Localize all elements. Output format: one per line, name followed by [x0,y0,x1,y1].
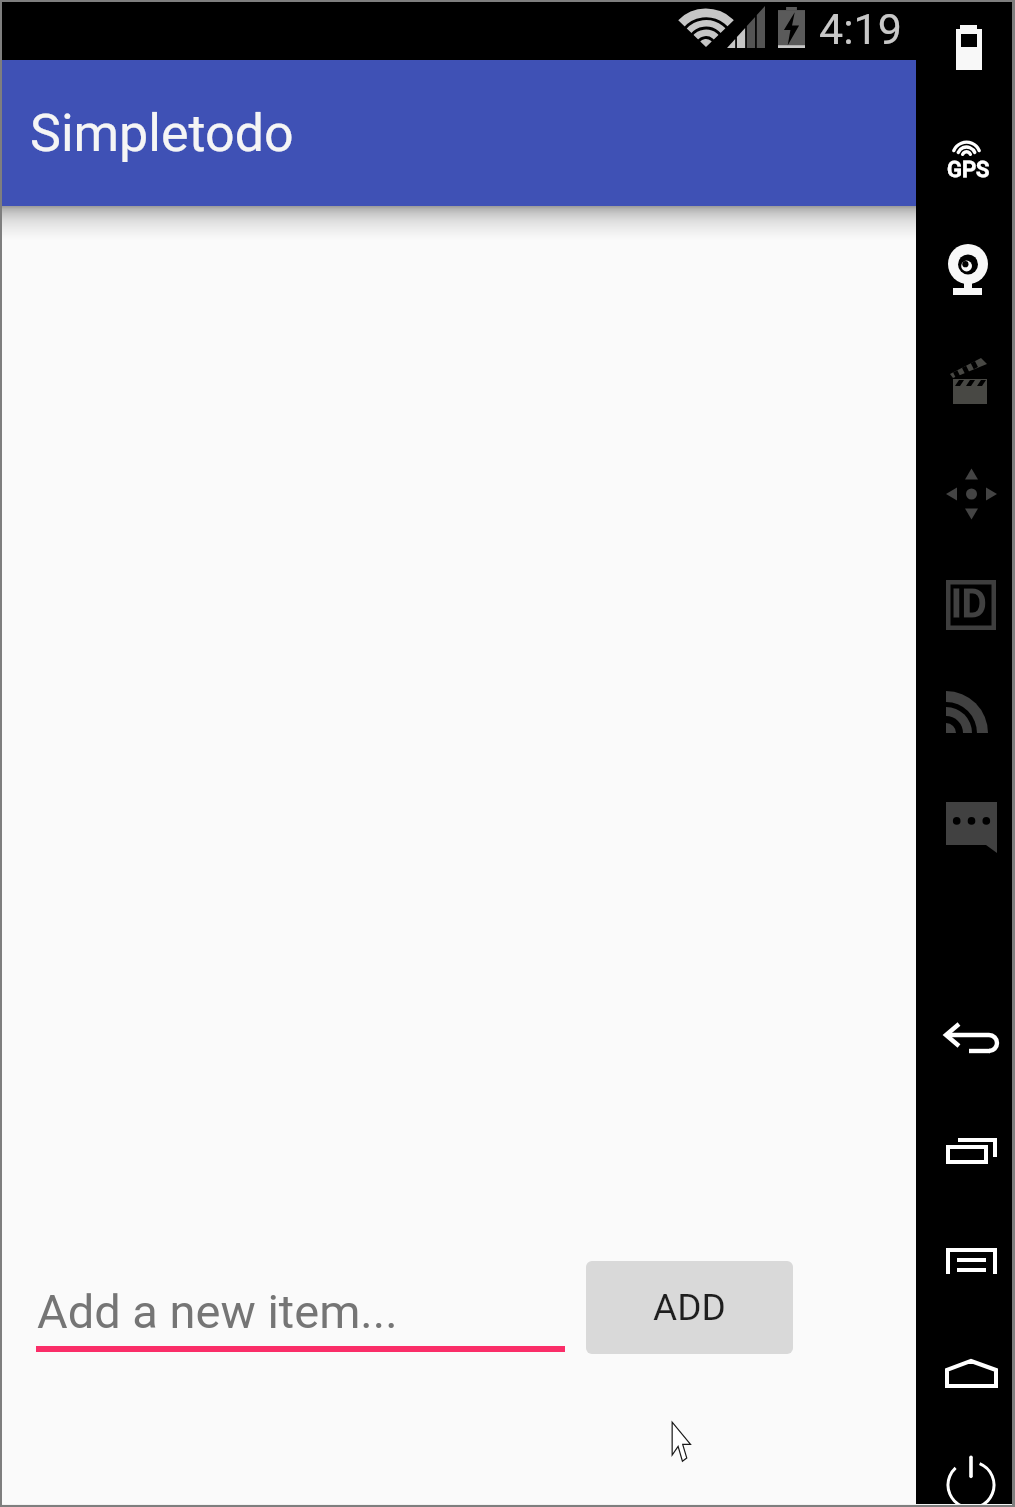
button[interactable]: Record screen [944,350,996,410]
button[interactable]: Back [930,1018,1008,1060]
staticText: Simpletodo [30,103,294,164]
button[interactable]: Battery [950,20,986,76]
button[interactable]: Menu [930,1244,1010,1280]
button[interactable]: Power [941,1440,1001,1507]
button[interactable]: Recents [930,1132,1010,1172]
staticText: ID [951,582,987,627]
button[interactable]: ADD [586,1261,793,1354]
button[interactable]: GPS [944,134,992,180]
button[interactable]: Move [946,464,998,524]
staticText: ADD [653,1286,726,1329]
staticText: 4:19 [819,4,902,54]
button[interactable]: Webcam [944,240,996,300]
button[interactable]: Add a new item... [36,1272,565,1352]
button[interactable]: Home [930,1354,1010,1392]
button[interactable]: Cellular [944,688,1000,736]
button[interactable]: Messages [930,798,1010,854]
staticText: GPS [947,157,990,183]
button[interactable]: Device ID [930,578,1006,630]
staticText: Add a new item... [37,1284,398,1339]
